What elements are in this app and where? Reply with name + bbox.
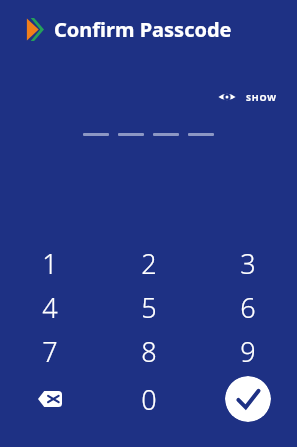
button[interactable]: 3 (198, 241, 297, 285)
staticText: 7 (42, 333, 58, 370)
staticText: 8 (141, 333, 157, 370)
staticText: 4 (42, 289, 58, 326)
button[interactable]: 8 (99, 329, 198, 373)
button[interactable]: 2 (99, 241, 198, 285)
staticText: 1 (42, 245, 58, 282)
button[interactable]: 7 (0, 329, 99, 373)
staticText: 9 (240, 333, 256, 370)
button[interactable]: Confirm (225, 376, 271, 422)
button[interactable]: 4 (0, 285, 99, 329)
staticText: 6 (240, 289, 256, 326)
staticText: 3 (240, 245, 256, 282)
staticText: 2 (141, 245, 157, 282)
staticText: 5 (141, 289, 157, 326)
button[interactable]: 9 (198, 329, 297, 373)
button[interactable]: 6 (198, 285, 297, 329)
button[interactable]: 5 (99, 285, 198, 329)
button[interactable]: 0 (99, 373, 198, 425)
staticText: 0 (141, 381, 157, 418)
button[interactable]: Backspace (0, 373, 99, 425)
staticText: SHOW (246, 91, 277, 103)
other: Show passcode (218, 90, 236, 104)
button[interactable]: 1 (0, 241, 99, 285)
button[interactable]: Show passcode (214, 86, 281, 108)
staticText: Confirm Passcode (54, 16, 232, 43)
